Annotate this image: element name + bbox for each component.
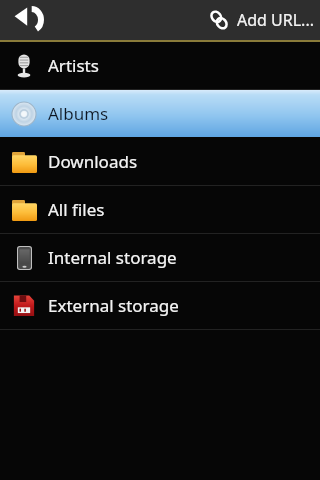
staticText: Downloads [48, 150, 138, 173]
button[interactable]: Artists [0, 42, 320, 89]
staticText: Artists [48, 54, 99, 77]
button[interactable]: Back [6, 0, 52, 40]
button[interactable]: External storage [0, 282, 320, 329]
staticText: Add URL... [237, 9, 314, 31]
staticText: External storage [48, 294, 179, 317]
staticText: All files [48, 198, 105, 221]
button[interactable]: Add URL... [208, 0, 314, 40]
staticText: Internal storage [48, 246, 177, 269]
button[interactable]: Downloads [0, 138, 320, 185]
staticText: Albums [48, 102, 109, 125]
button[interactable]: All files [0, 186, 320, 233]
button[interactable]: Internal storage [0, 234, 320, 281]
button[interactable]: Albums [0, 90, 320, 137]
